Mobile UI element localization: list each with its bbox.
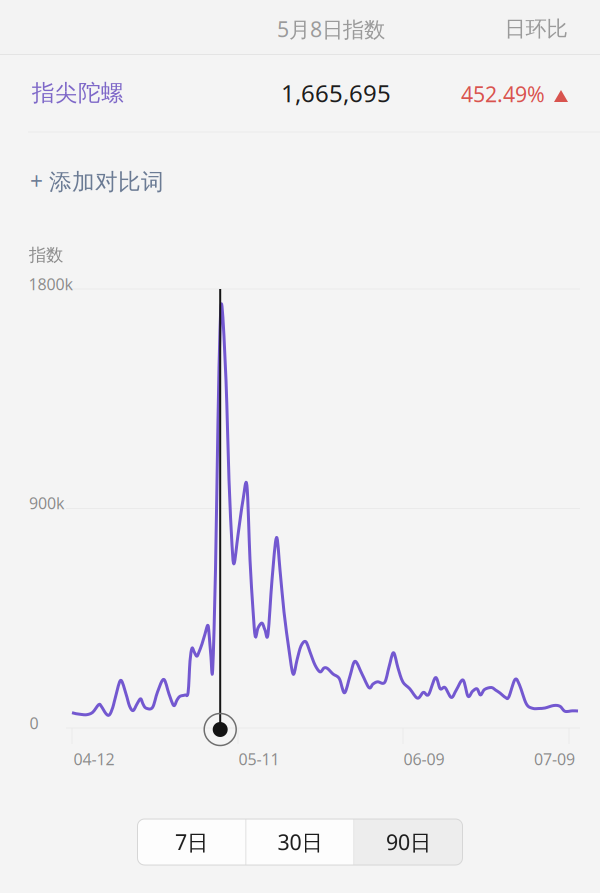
button[interactable]: 指尖陀螺: [0, 55, 600, 131]
staticText: 5月8日指数: [277, 15, 385, 43]
staticText: 日环比: [504, 16, 567, 42]
button[interactable]: 7日: [137, 819, 245, 865]
staticText: 0: [29, 712, 38, 734]
staticText: 90日: [386, 828, 431, 856]
staticText: 30日: [277, 828, 322, 856]
staticText: + 添加对比词: [30, 166, 164, 196]
staticText: 1800k: [28, 273, 73, 295]
button[interactable]: + 添加对比词: [17, 157, 217, 205]
staticText: 06-09: [403, 748, 444, 770]
staticText: 7日: [175, 828, 208, 856]
staticText: 07-09: [534, 748, 575, 770]
staticText: 900k: [29, 492, 65, 514]
staticText: 452.49%: [461, 80, 545, 108]
staticText: 1,665,695: [281, 77, 391, 109]
staticText: 指数: [29, 244, 63, 266]
staticText: 05-11: [238, 748, 279, 770]
button[interactable]: 30日: [246, 819, 353, 865]
button[interactable]: 90日: [354, 819, 462, 865]
staticText: 04-12: [73, 748, 114, 770]
staticText: 指尖陀螺: [32, 79, 124, 107]
